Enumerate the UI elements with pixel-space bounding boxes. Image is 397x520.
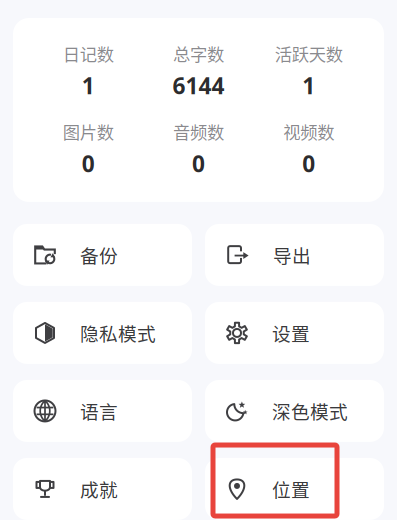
staticText: 深色模式 <box>272 397 348 424</box>
button[interactable]: 导出 <box>205 224 384 286</box>
staticText: 成就 <box>80 475 118 502</box>
staticText: 总字数 <box>173 41 224 66</box>
staticText: 0 <box>192 148 205 179</box>
staticText: 1 <box>82 70 95 101</box>
staticText: 6144 <box>172 70 224 101</box>
button[interactable]: 深色模式 <box>205 380 384 442</box>
staticText: 0 <box>302 148 315 179</box>
staticText: 语言 <box>80 397 118 424</box>
staticText: 图片数 <box>63 119 114 144</box>
button[interactable]: 语言 <box>13 380 192 442</box>
staticText: 位置 <box>272 475 310 502</box>
staticText: 1 <box>302 70 315 101</box>
button[interactable]: 备份 <box>13 224 192 286</box>
staticText: 0 <box>82 148 95 179</box>
button[interactable]: 位置 <box>205 458 384 520</box>
staticText: 隐私模式 <box>80 319 156 346</box>
staticText: 活跃天数 <box>275 41 343 66</box>
staticText: 导出 <box>273 241 311 268</box>
button[interactable]: 隐私模式 <box>13 302 192 364</box>
button[interactable]: 设置 <box>205 302 384 364</box>
button[interactable]: 成就 <box>13 458 192 520</box>
staticText: 设置 <box>272 319 310 346</box>
staticText: 备份 <box>80 241 118 268</box>
staticText: 日记数 <box>63 41 114 66</box>
staticText: 视频数 <box>283 119 334 144</box>
staticText: 音频数 <box>173 119 224 144</box>
